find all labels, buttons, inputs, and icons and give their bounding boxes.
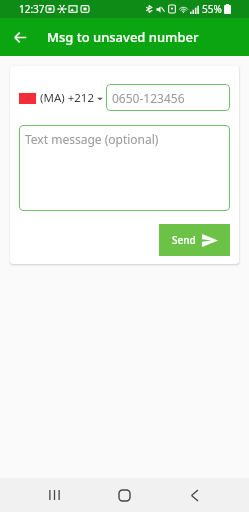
button[interactable]: Back — [7, 24, 33, 50]
button[interactable]: Home — [89, 478, 159, 512]
button[interactable]: Back — [159, 478, 229, 512]
staticText: Send — [172, 233, 196, 247]
button[interactable]: (MA) +212 — [19, 90, 103, 106]
staticText: Text message (optional) — [25, 131, 159, 147]
button[interactable]: Send — [159, 224, 230, 256]
staticText: 12:37 — [19, 2, 45, 16]
button[interactable]: Recent apps — [19, 478, 89, 512]
staticText: 55% — [202, 2, 222, 16]
staticText: Msg to unsaved number — [47, 28, 199, 46]
button[interactable]: 0650-123456 — [106, 84, 230, 111]
staticText: 0650-123456 — [112, 90, 185, 106]
staticText: (MA) +212 — [40, 90, 94, 106]
button[interactable]: Text message (optional) — [19, 125, 230, 211]
